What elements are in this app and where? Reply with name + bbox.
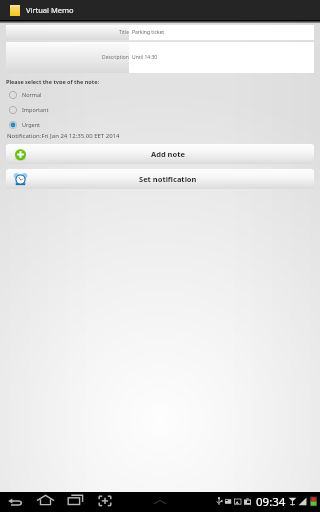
button[interactable]: Urgent: [0, 117, 320, 132]
staticText: Please select the type of the note:: [6, 78, 100, 84]
button[interactable]: Add note: [6, 144, 314, 164]
staticText: Urgent: [22, 121, 41, 128]
button[interactable]: Screenshot: [91, 492, 119, 512]
staticText: Add note: [151, 149, 185, 159]
staticText: Important: [22, 106, 49, 113]
staticText: Notification:Fri Jan 24 12:35.00 EET 201…: [7, 132, 120, 139]
button[interactable]: Important: [0, 102, 320, 117]
staticText: 09:34: [256, 494, 286, 510]
staticText: Set notification: [139, 174, 197, 184]
button[interactable]: Back: [2, 492, 30, 512]
staticText: Virtual Memo: [26, 5, 74, 15]
button[interactable]: Recents: [61, 492, 89, 512]
staticText: Title:: [119, 29, 131, 36]
staticText: Until 14:30: [132, 54, 158, 61]
button[interactable]: Normal: [0, 87, 320, 102]
staticText: Normal: [22, 91, 42, 98]
button[interactable]: Home: [31, 492, 59, 512]
staticText: Description:: [102, 54, 131, 61]
button[interactable]: Set notification: [6, 169, 314, 189]
staticText: Parking ticket: [132, 29, 165, 36]
